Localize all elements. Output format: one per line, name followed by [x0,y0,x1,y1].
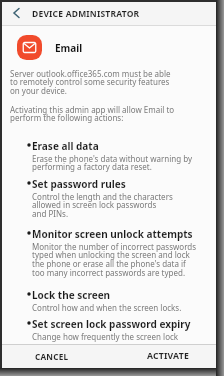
staticText: Set screen lock password expiry [32,317,191,331]
staticText: Email [55,41,83,55]
staticText: CANCEL [35,351,69,362]
staticText: Change how frequently the screen lock [32,331,179,342]
staticText: Server outlook.office365.com must be abl… [10,68,171,96]
staticText: ACTIVATE [147,350,189,362]
button[interactable]: ACTIVATE [118,344,218,368]
staticText: Set password rules [32,177,126,191]
staticText: Monitor screen unlock attempts [32,227,193,241]
staticText: Erase all data [32,139,99,153]
staticText: Lock the screen [32,288,111,302]
staticText: Control the length and the characters al… [32,191,173,219]
button[interactable]: CANCEL [2,344,102,368]
staticText: Monitor the number of incorrect password… [32,241,197,278]
staticText: Control how and when the screen locks. [32,302,182,313]
staticText: Erase the phone's data without warning b… [32,153,193,172]
staticText: DEVICE ADMINISTRATOR [32,8,140,20]
staticText: Activating this admin app will allow Ema… [10,104,175,123]
button[interactable] [2,2,30,26]
